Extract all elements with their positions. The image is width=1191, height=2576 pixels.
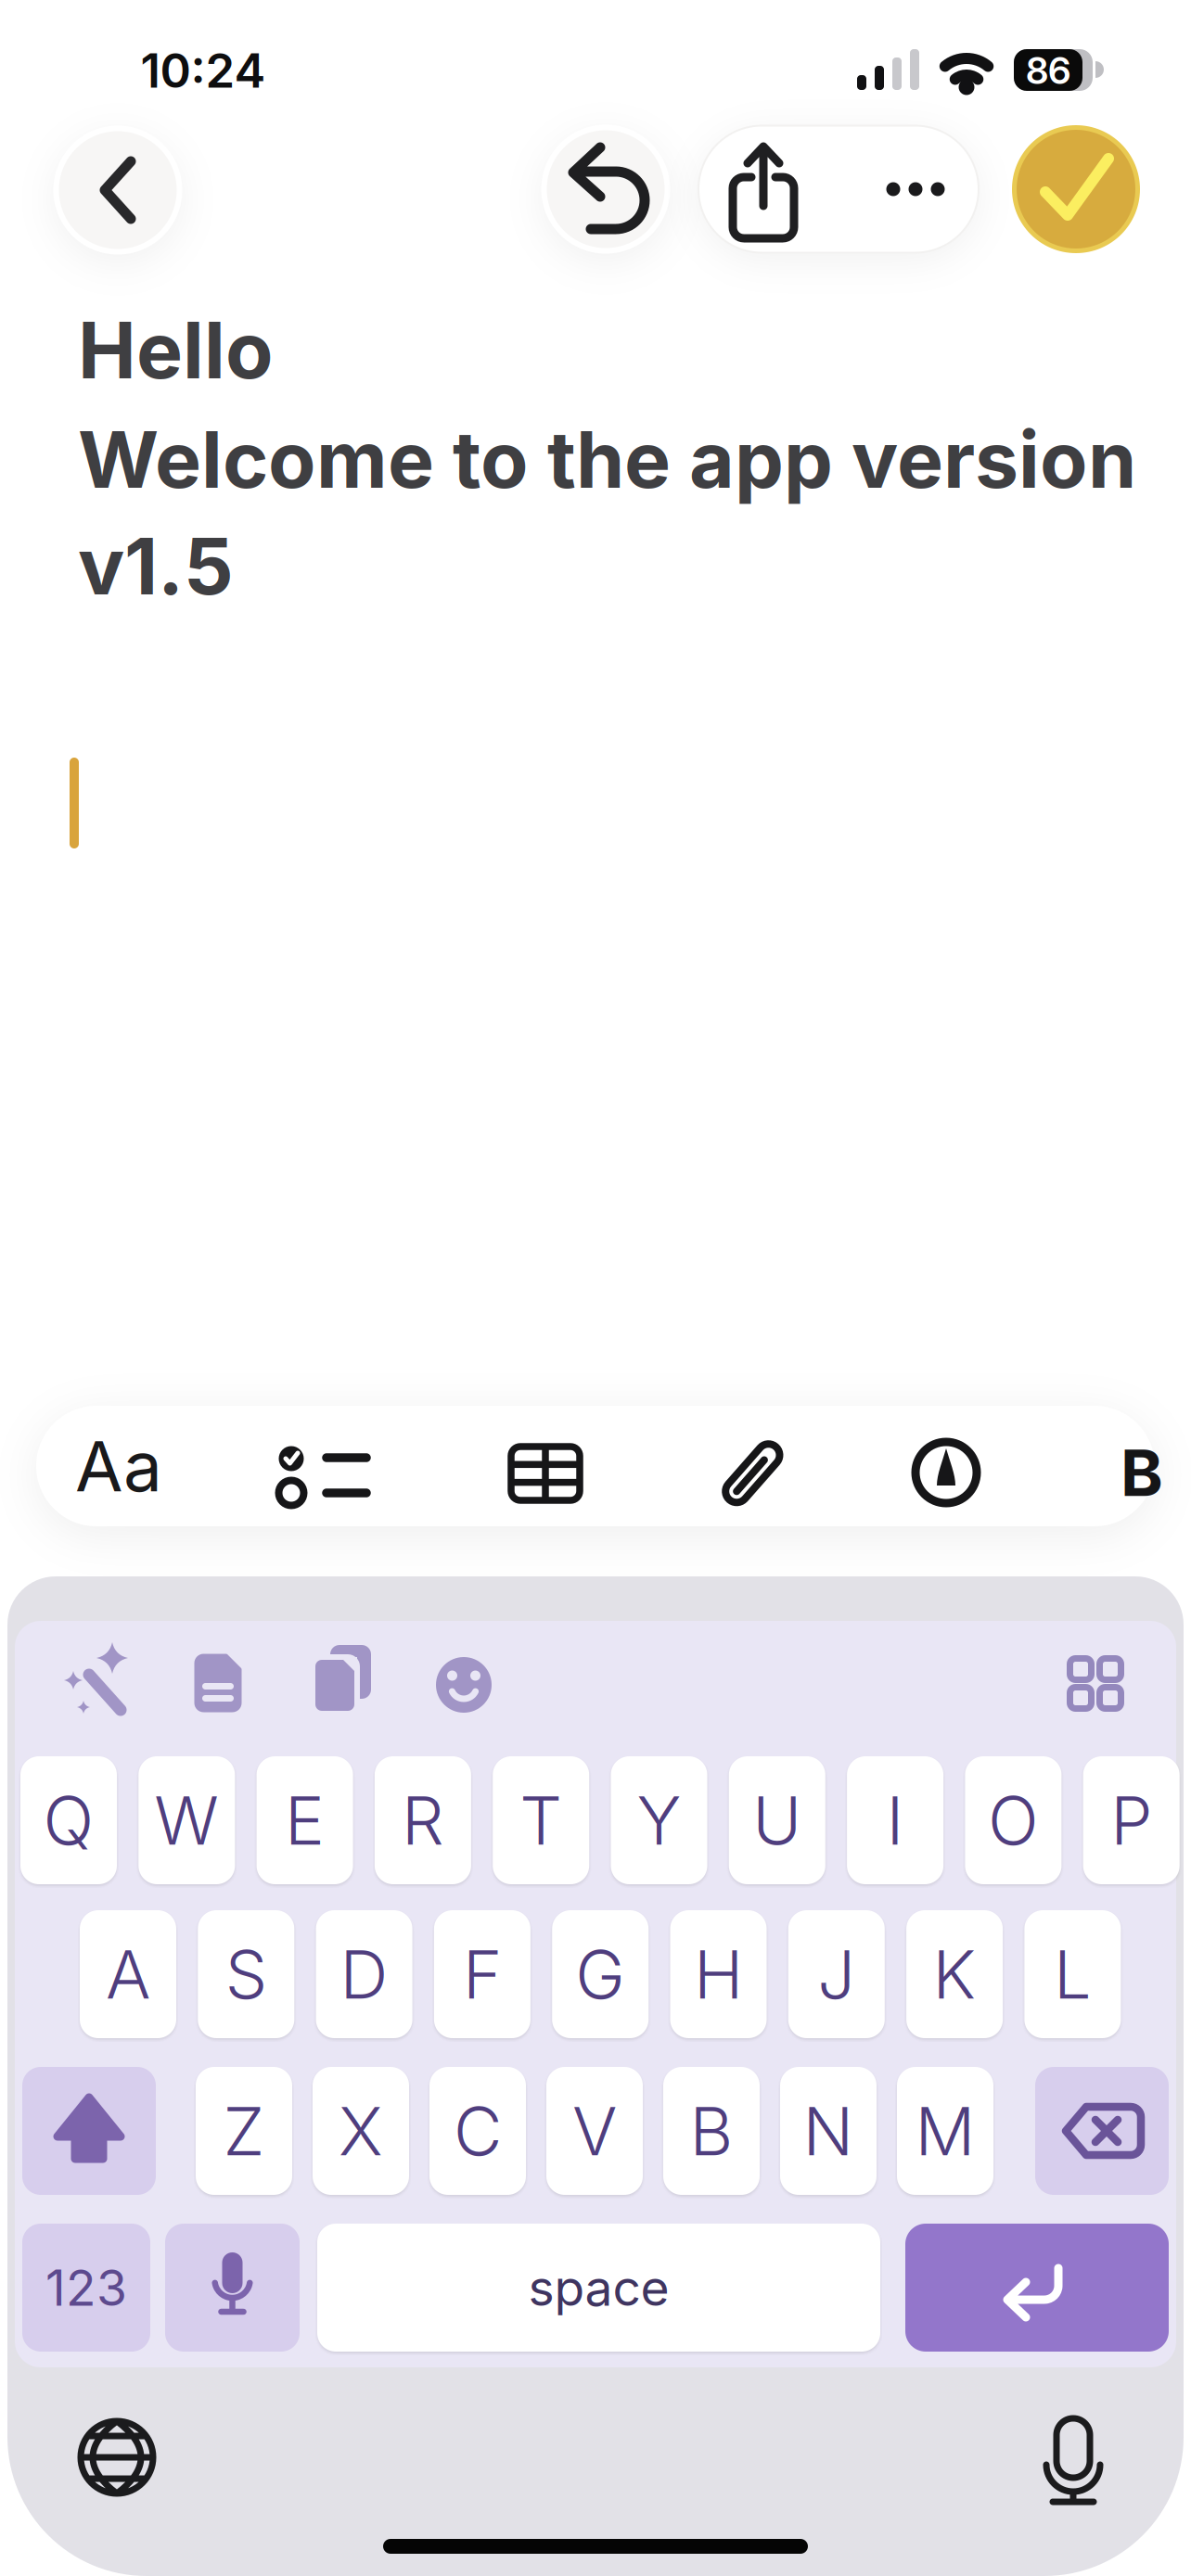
staticText: R xyxy=(402,1781,444,1860)
staticText: V xyxy=(572,2091,617,2170)
button[interactable]: B xyxy=(663,2067,760,2195)
button[interactable]: Emoji xyxy=(413,1634,515,1736)
button[interactable]: Return xyxy=(905,2224,1169,2352)
staticText: Hello xyxy=(78,304,274,396)
button[interactable]: C xyxy=(429,2067,526,2195)
staticText: 123 xyxy=(45,2258,127,2317)
button[interactable]: G xyxy=(552,1910,649,2038)
staticText: I xyxy=(886,1781,904,1860)
staticText: P xyxy=(1110,1781,1152,1860)
button[interactable]: V xyxy=(546,2067,643,2195)
button[interactable]: W xyxy=(138,1756,235,1884)
staticText: U xyxy=(753,1781,802,1860)
button[interactable]: D xyxy=(316,1910,412,2038)
button[interactable]: L xyxy=(1024,1910,1121,2038)
button[interactable]: Q xyxy=(20,1756,117,1884)
button[interactable]: More xyxy=(851,126,980,253)
staticText: X xyxy=(339,2091,383,2170)
button[interactable]: Magic xyxy=(45,1632,147,1734)
button[interactable]: U xyxy=(729,1756,825,1884)
staticText: v1.5 xyxy=(78,520,234,612)
staticText: Z xyxy=(223,2091,265,2170)
staticText: space xyxy=(528,2258,669,2317)
staticText: C xyxy=(454,2091,502,2170)
staticText: D xyxy=(340,1935,388,2014)
staticText: L xyxy=(1054,1935,1092,2014)
staticText: T xyxy=(520,1781,562,1860)
staticText: H xyxy=(694,1935,743,2014)
button[interactable]: Shift xyxy=(22,2067,156,2195)
button[interactable]: Draw xyxy=(872,1412,1020,1533)
button[interactable]: M xyxy=(897,2067,993,2195)
staticText: Y xyxy=(637,1781,681,1860)
button[interactable]: O xyxy=(965,1756,1062,1884)
staticText: Welcome to the app version xyxy=(78,414,1136,505)
button[interactable]: Bold xyxy=(1109,1412,1174,1533)
staticText: J xyxy=(817,1935,855,2014)
button[interactable]: J xyxy=(788,1910,885,2038)
button[interactable]: Share xyxy=(698,126,828,253)
staticText: G xyxy=(575,1935,625,2014)
button[interactable]: Z xyxy=(196,2067,292,2195)
button[interactable]: Clipboard xyxy=(289,1630,391,1732)
staticText: N xyxy=(803,2091,854,2170)
staticText: Q xyxy=(43,1781,94,1860)
button[interactable]: I xyxy=(847,1756,943,1884)
button[interactable]: X xyxy=(313,2067,409,2195)
staticText: B xyxy=(690,2091,733,2170)
staticText: 10:24 xyxy=(141,43,266,98)
button[interactable]: Undo xyxy=(544,128,667,251)
staticText: S xyxy=(225,1935,267,2014)
button[interactable]: A xyxy=(80,1910,176,2038)
staticText: M xyxy=(915,2091,975,2170)
staticText: F xyxy=(463,1935,502,2014)
button[interactable]: Checklist xyxy=(253,1419,402,1539)
button[interactable]: K xyxy=(906,1910,1003,2038)
staticText: 86 xyxy=(1026,49,1070,92)
button[interactable]: Dictate xyxy=(1018,2404,1129,2516)
button[interactable]: Space xyxy=(317,2224,880,2352)
staticText: E xyxy=(285,1781,325,1860)
button[interactable]: T xyxy=(493,1756,589,1884)
button[interactable]: Next keyboard xyxy=(66,2406,168,2508)
staticText: O xyxy=(988,1781,1039,1860)
staticText: Aa xyxy=(75,1425,162,1507)
button[interactable]: Done xyxy=(1014,128,1138,251)
button[interactable]: E xyxy=(257,1756,353,1884)
button[interactable]: Numbers xyxy=(22,2224,150,2352)
staticText: W xyxy=(154,1781,219,1860)
button[interactable]: R xyxy=(375,1756,471,1884)
button[interactable]: Delete xyxy=(1035,2067,1169,2195)
button[interactable]: Templates xyxy=(167,1632,269,1734)
button[interactable]: Back xyxy=(56,128,179,252)
staticText: K xyxy=(933,1935,976,2014)
button[interactable]: S xyxy=(198,1910,294,2038)
button[interactable]: Dictate xyxy=(165,2224,300,2352)
button[interactable]: F xyxy=(434,1910,530,2038)
button[interactable]: Y xyxy=(611,1756,707,1884)
button[interactable]: Text style xyxy=(40,1406,198,1526)
button[interactable]: P xyxy=(1083,1756,1180,1884)
button[interactable]: H xyxy=(670,1910,767,2038)
button[interactable]: Attachment xyxy=(679,1412,827,1533)
button[interactable]: Table xyxy=(471,1413,620,1534)
button[interactable]: Apps xyxy=(1044,1632,1146,1734)
staticText: A xyxy=(106,1935,150,2014)
staticText: B xyxy=(1121,1435,1163,1510)
button[interactable]: N xyxy=(780,2067,877,2195)
